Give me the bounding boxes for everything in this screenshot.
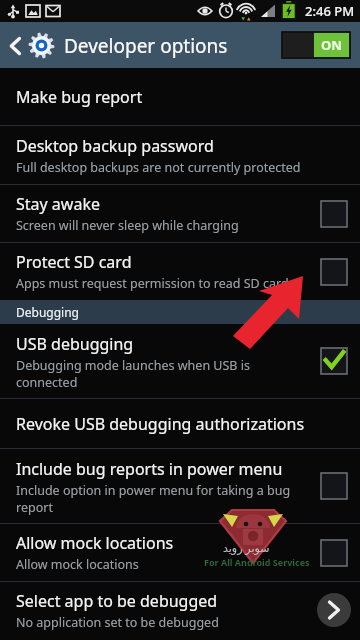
button[interactable]: Select app to be debugged <box>0 582 360 639</box>
staticText: Developer options <box>64 33 228 59</box>
staticText: Select app to be debugged <box>16 590 218 612</box>
staticText: Apps must request permission to read SD … <box>16 275 289 292</box>
staticText: USB debugging <box>16 333 134 355</box>
button[interactable]: Protect SD card <box>0 243 360 300</box>
button[interactable]: Revoke USB debugging authorizations <box>0 399 360 448</box>
staticText: Full desktop backups are not currently p… <box>16 159 301 176</box>
staticText: 2:46 PM <box>305 2 355 20</box>
button[interactable]: Include bug reports in power menu checkb… <box>321 473 347 499</box>
button[interactable]: Developer options on <box>282 32 350 58</box>
button[interactable]: Allow mock locations <box>0 524 360 581</box>
button[interactable]: USB debugging checkbox <box>321 348 347 374</box>
staticText: Include option in power menu for taking … <box>16 482 313 515</box>
staticText: Protect SD card <box>16 251 132 273</box>
staticText: سوبر رويد <box>223 540 270 555</box>
staticText: Revoke USB debugging authorizations <box>16 413 305 435</box>
staticText: Debugging mode launches when USB is conn… <box>16 357 313 390</box>
button[interactable]: Protect SD card checkbox <box>321 259 347 285</box>
staticText: Make bug report <box>16 86 143 108</box>
button[interactable]: USB debugging <box>0 324 360 398</box>
staticText: Include bug reports in power menu <box>16 458 283 480</box>
staticText: Desktop backup password <box>16 135 214 157</box>
button[interactable]: Stay awake checkbox <box>321 201 347 227</box>
staticText: No application set to be debugged <box>16 614 219 631</box>
button[interactable]: Make bug report <box>0 68 360 125</box>
staticText: Stay awake <box>16 193 100 215</box>
staticText: ON <box>321 36 342 54</box>
staticText: For All Android Services <box>204 556 310 568</box>
button[interactable]: Allow mock locations checkbox <box>321 540 347 566</box>
staticText: Allow mock locations <box>16 532 174 554</box>
staticText: Allow mock locations <box>16 556 139 573</box>
staticText: Debugging <box>16 304 79 320</box>
button[interactable]: Desktop backup password <box>0 126 360 184</box>
button[interactable]: Include bug reports in power menu <box>0 449 360 523</box>
button[interactable]: Back <box>0 27 232 64</box>
staticText: Screen will never sleep while charging <box>16 217 239 234</box>
button[interactable]: Stay awake <box>0 185 360 242</box>
